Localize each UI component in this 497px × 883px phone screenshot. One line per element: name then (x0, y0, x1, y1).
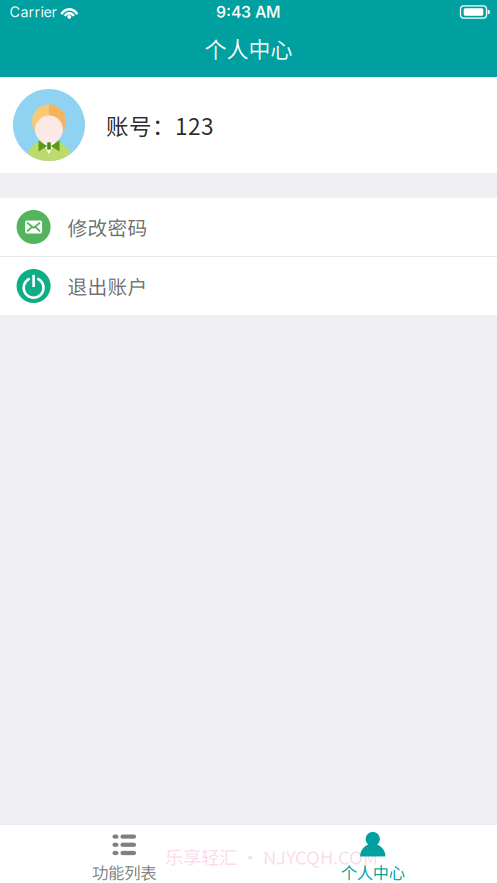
button[interactable]: 个人中心 (248, 824, 497, 883)
staticText: Carrier (9, 3, 56, 21)
button[interactable]: 退出账户 (0, 257, 497, 315)
staticText: 账号：123 (106, 109, 214, 141)
button[interactable]: 修改密码 (0, 198, 497, 256)
staticText: 功能列表 (92, 860, 156, 883)
staticText: 9:43 AM (216, 2, 281, 21)
button[interactable]: 功能列表 (0, 824, 248, 883)
staticText: 修改密码 (68, 213, 148, 241)
staticText: 退出账户 (68, 272, 148, 300)
staticText: 个人中心 (341, 860, 405, 883)
staticText: 乐享轻汇 · NJYCQH.COM (165, 843, 378, 870)
staticText: 个人中心 (204, 32, 292, 64)
